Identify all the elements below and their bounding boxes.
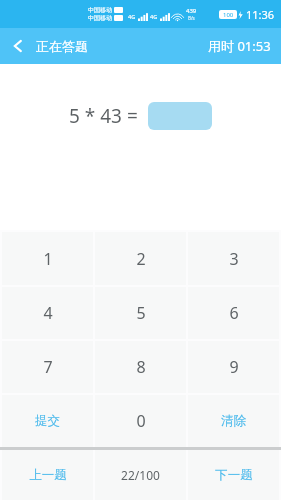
staticText: 4G <box>150 13 158 20</box>
button[interactable]: 5 <box>95 287 186 339</box>
button[interactable]: 上一题 <box>2 450 93 500</box>
staticText: 用时 01:53 <box>208 37 271 55</box>
button[interactable]: 下一题 <box>188 450 279 500</box>
button[interactable]: 9 <box>188 341 279 393</box>
staticText: 0 <box>136 410 146 432</box>
button[interactable]: 6 <box>188 287 279 339</box>
staticText: 6 <box>229 302 239 324</box>
button[interactable]: 提交 <box>2 395 93 447</box>
staticText: 9 <box>229 356 239 378</box>
staticText: 100 <box>223 11 234 19</box>
staticText: 下一题 <box>215 467 253 483</box>
button[interactable]: 0 <box>95 395 186 447</box>
button[interactable]: 22/100 <box>95 450 186 500</box>
button[interactable] <box>148 102 212 130</box>
button[interactable]: Back <box>0 32 96 60</box>
staticText: 4G <box>128 13 136 20</box>
staticText: 2 <box>136 248 146 270</box>
staticText: B/s <box>188 15 195 21</box>
staticText: 439 <box>186 7 197 15</box>
staticText: 清除 <box>221 413 246 429</box>
button[interactable]: 8 <box>95 341 186 393</box>
staticText: 5 <box>136 302 146 324</box>
button[interactable]: 3 <box>188 232 279 285</box>
staticText: 1 <box>43 248 53 270</box>
button[interactable]: 1 <box>2 232 93 285</box>
staticText: 4 <box>43 302 53 324</box>
staticText: 11:36 <box>246 7 275 22</box>
staticText: 7 <box>43 356 53 378</box>
staticText: 8 <box>136 356 146 378</box>
button[interactable]: 4 <box>2 287 93 339</box>
staticText: 5 * 43 = <box>69 103 138 129</box>
staticText: 22/100 <box>121 467 160 483</box>
button[interactable]: 7 <box>2 341 93 393</box>
staticText: 中国移动 <box>88 14 112 22</box>
staticText: 上一题 <box>29 467 67 483</box>
button[interactable]: 2 <box>95 232 186 285</box>
staticText: 中国移动 <box>88 6 112 14</box>
button[interactable]: 清除 <box>188 395 279 447</box>
staticText: 提交 <box>35 413 60 429</box>
other: Back <box>10 38 26 54</box>
staticText: 3 <box>229 248 239 270</box>
staticText: 正在答题 <box>36 38 88 54</box>
